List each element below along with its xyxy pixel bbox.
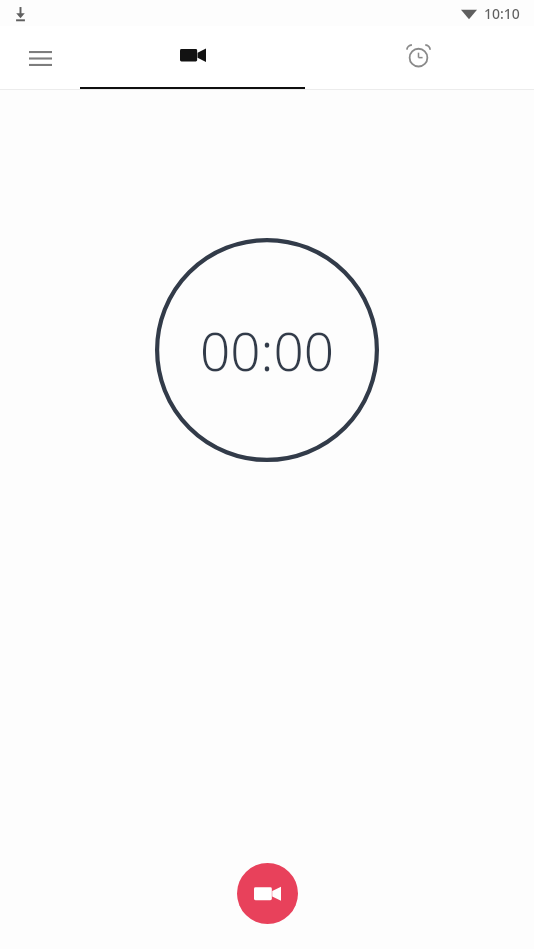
staticText: 00:00 [200, 314, 334, 386]
staticText: 10:10 [484, 4, 520, 23]
button[interactable]: Start recording [237, 863, 298, 924]
button[interactable]: Open navigation menu [0, 26, 80, 90]
button[interactable]: Alarms tab [305, 26, 534, 90]
button[interactable]: Recorder tab [80, 26, 305, 90]
